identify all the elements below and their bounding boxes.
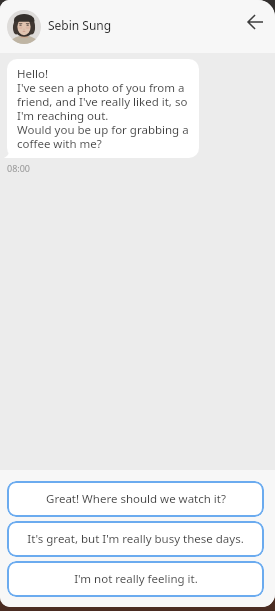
button[interactable]: It's great, but I'm really busy these da… <box>7 521 264 557</box>
staticText: I'm not really feeling it. <box>74 571 198 587</box>
staticText: Great! Where should we watch it? <box>46 491 226 507</box>
button[interactable]: Sebin Sung <box>0 4 130 50</box>
staticText: Sebin Sung <box>48 17 112 33</box>
button[interactable]: Back <box>243 10 267 34</box>
button[interactable]: Great! Where should we watch it? <box>7 481 264 517</box>
button[interactable]: I'm not really feeling it. <box>7 561 264 597</box>
staticText: Hello! I've seen a photo of you from a f… <box>17 66 189 151</box>
staticText: 08:00 <box>7 162 31 174</box>
button[interactable]: Hello! I've seen a photo of you from a f… <box>7 59 199 158</box>
staticText: It's great, but I'm really busy these da… <box>27 531 244 547</box>
